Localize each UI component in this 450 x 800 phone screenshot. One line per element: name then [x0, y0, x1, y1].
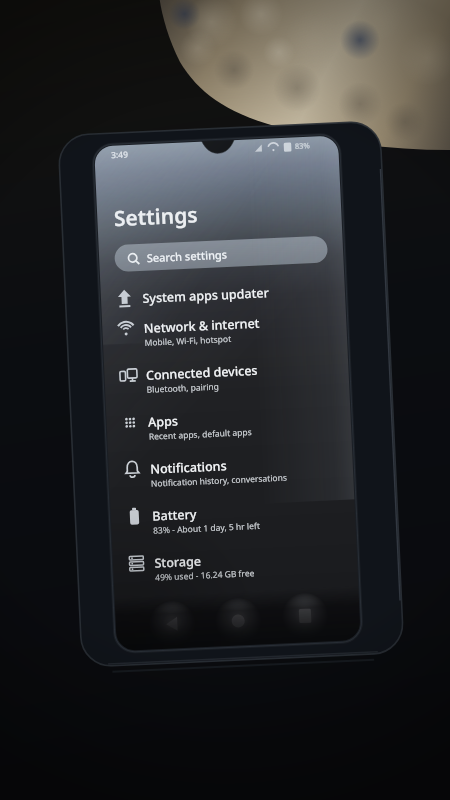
button[interactable]: Photo of a phone showing the Android Set…: [0, 0, 450, 800]
